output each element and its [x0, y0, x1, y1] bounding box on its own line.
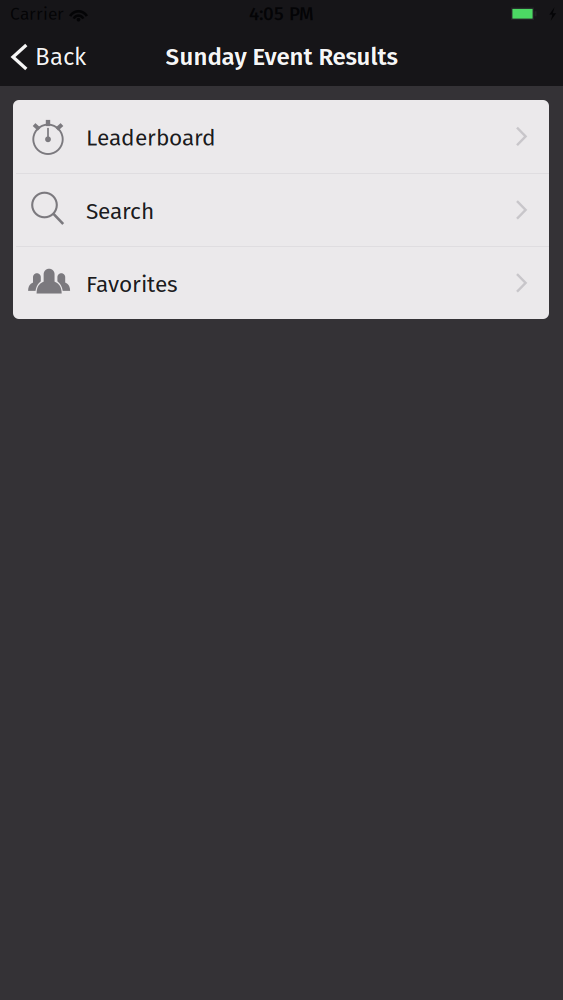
staticText: Favorites: [86, 271, 178, 298]
staticText: Sunday Event Results: [165, 43, 397, 71]
button[interactable]: Leaderboard: [13, 100, 549, 173]
button[interactable]: Back: [0, 28, 98, 86]
staticText: 4:05 PM: [249, 3, 314, 25]
staticText: Carrier: [10, 4, 64, 24]
staticText: Back: [35, 43, 86, 71]
staticText: Leaderboard: [86, 124, 216, 152]
button[interactable]: Favorites: [13, 247, 549, 319]
button[interactable]: Search: [13, 174, 549, 246]
staticText: Search: [86, 198, 154, 225]
